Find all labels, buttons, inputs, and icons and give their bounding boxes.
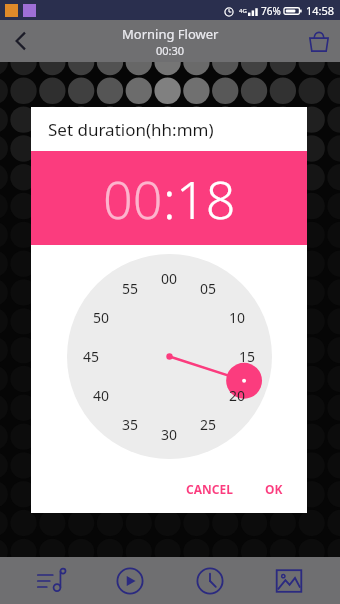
button[interactable]: Image: [261, 557, 317, 604]
button[interactable]: Back: [0, 20, 42, 62]
staticText: 50: [93, 308, 110, 327]
staticText: 4G: [239, 7, 247, 15]
staticText: OK: [265, 481, 283, 497]
staticText: 35: [122, 415, 139, 434]
staticText: 40: [93, 386, 110, 405]
staticText: CANCEL: [186, 481, 233, 497]
button[interactable]: CANCEL: [178, 473, 241, 505]
staticText: 10: [229, 308, 246, 327]
staticText: 25: [200, 415, 217, 434]
button[interactable]: 18: [176, 163, 236, 234]
staticText: 00:30: [156, 43, 185, 58]
button[interactable]: Playlist: [23, 557, 79, 604]
staticText: 45: [83, 347, 100, 366]
staticText: 14:58: [306, 3, 335, 18]
staticText: 00: [161, 269, 178, 288]
staticText: Set duration(hh:mm): [48, 118, 214, 141]
button[interactable]: 00: [103, 163, 163, 234]
staticText: 30: [161, 425, 178, 444]
staticText: 76%: [261, 4, 281, 18]
button[interactable]: Minute picker: [67, 254, 272, 459]
staticText: :: [163, 163, 176, 234]
staticText: 05: [200, 279, 217, 298]
button[interactable]: OK: [257, 473, 291, 505]
staticText: 55: [122, 279, 139, 298]
staticText: 20: [229, 386, 246, 405]
button[interactable]: Timer: [182, 557, 238, 604]
button[interactable]: Play: [102, 557, 158, 604]
staticText: 15: [239, 347, 256, 366]
button[interactable]: Store: [298, 20, 340, 62]
staticText: Morning Flower: [122, 25, 219, 43]
